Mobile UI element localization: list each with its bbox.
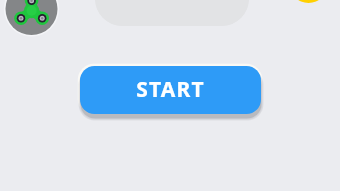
- button[interactable]: Spinner: [5, 0, 58, 36]
- staticText: START: [136, 75, 205, 104]
- button[interactable]: START: [80, 66, 261, 114]
- button[interactable]: Coins: [289, 0, 328, 3]
